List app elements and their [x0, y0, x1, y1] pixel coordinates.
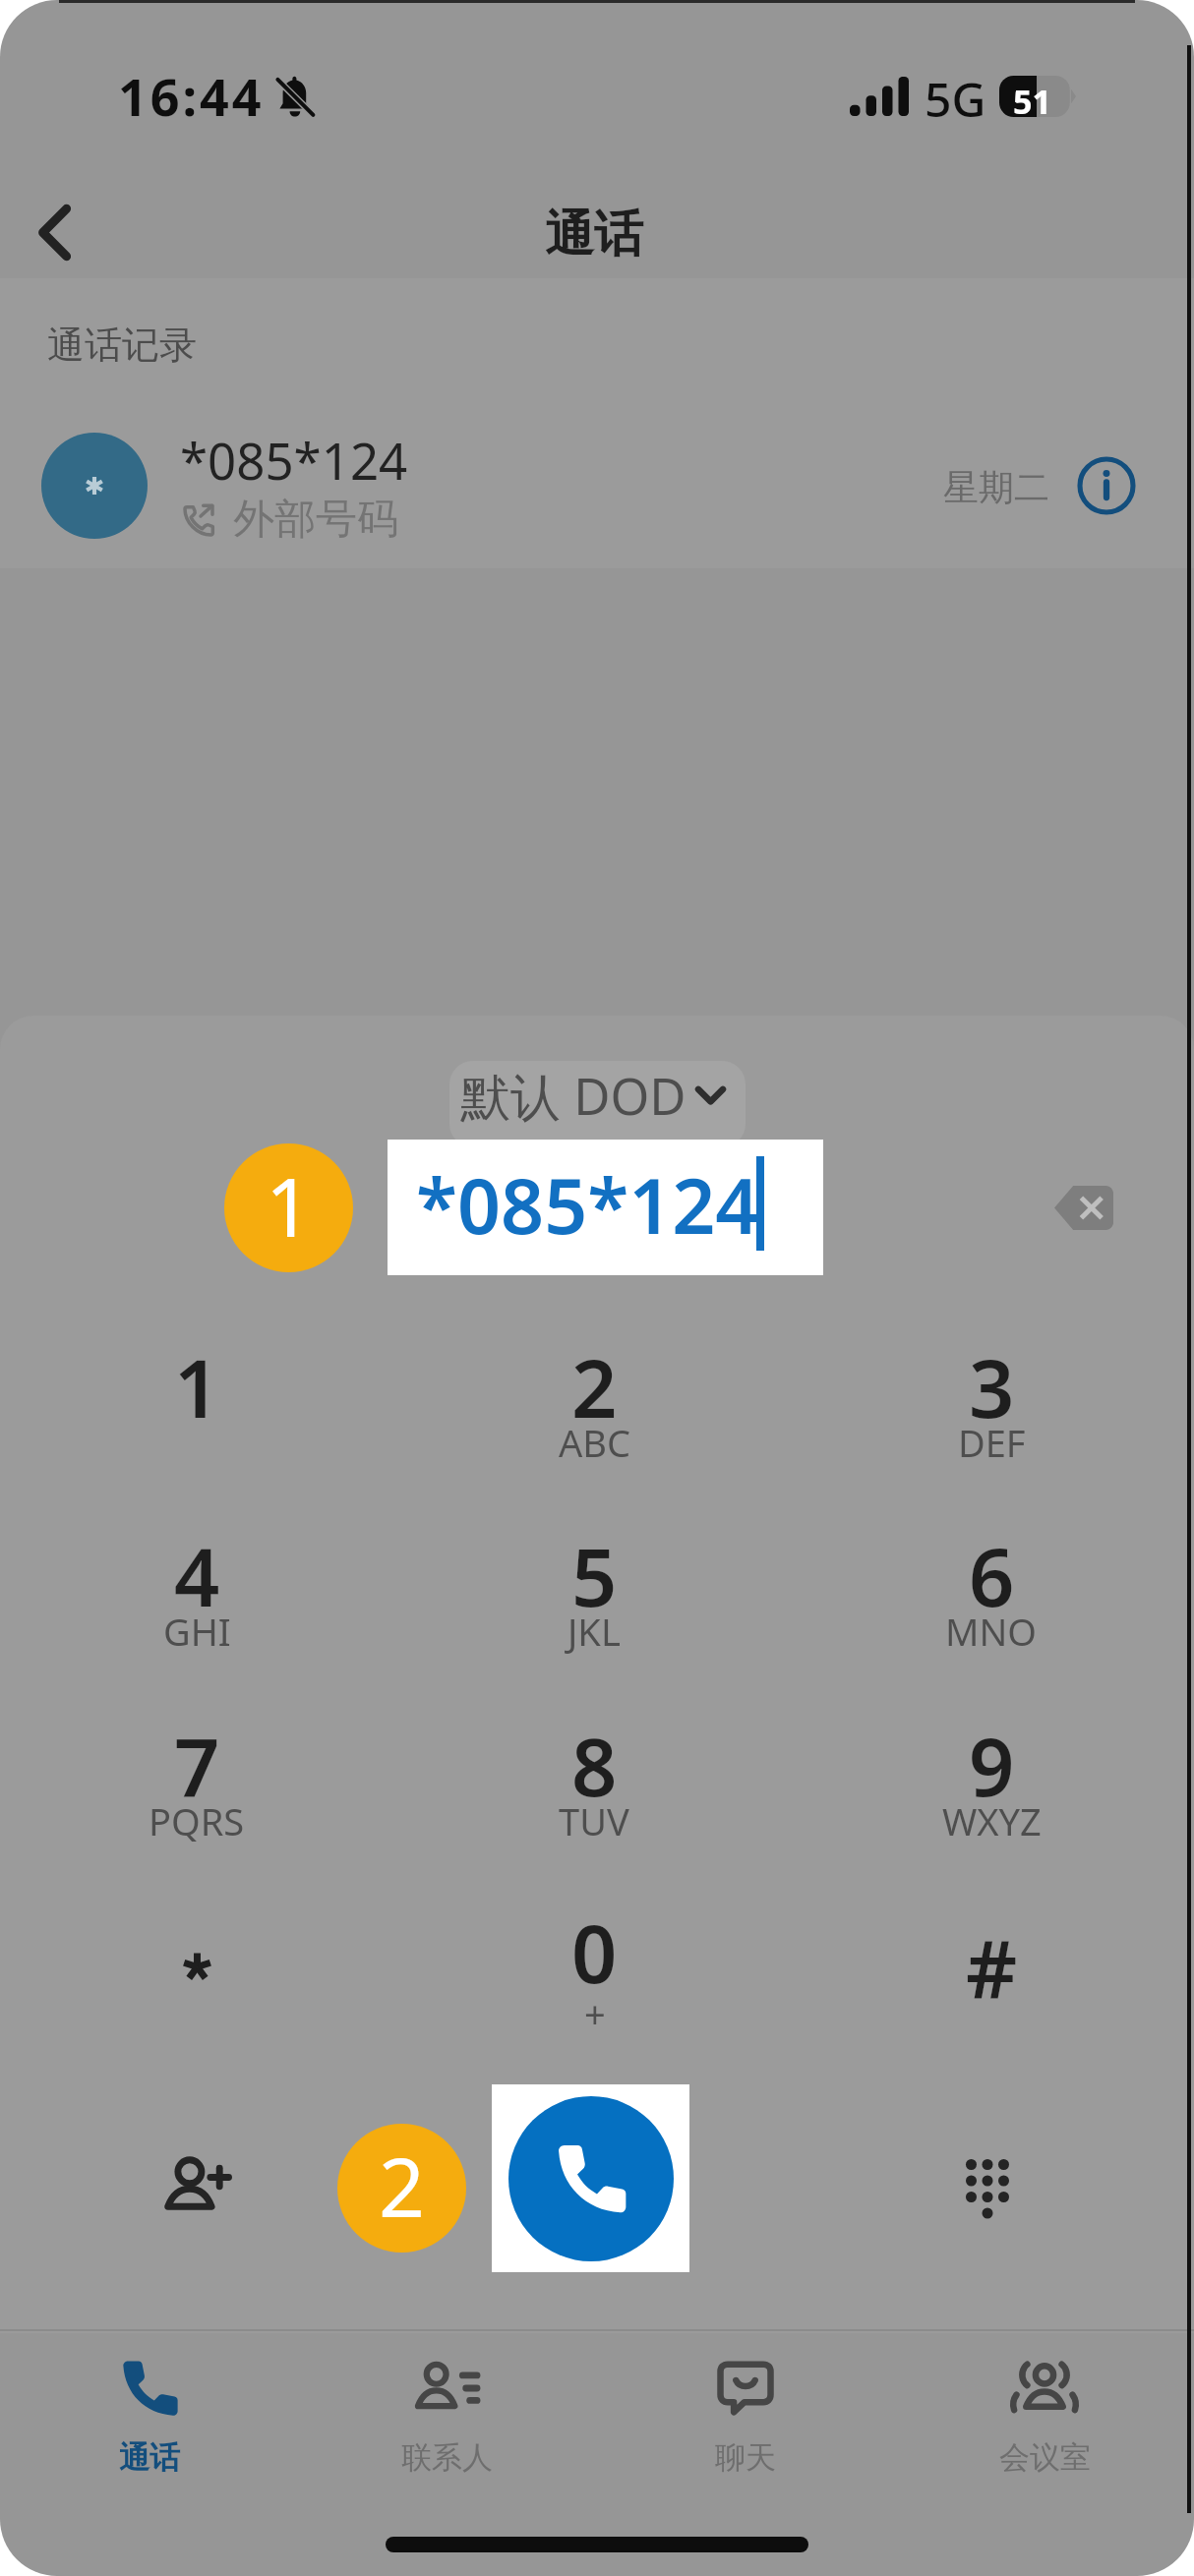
- button[interactable]: 会议室: [895, 2331, 1194, 2508]
- staticText: 5: [571, 1521, 618, 1629]
- button[interactable]: 8: [466, 1711, 722, 1893]
- button[interactable]: Back: [14, 173, 108, 291]
- staticText: *085*124: [180, 426, 408, 494]
- staticText: JKL: [567, 1606, 621, 1657]
- button[interactable]: 4: [69, 1521, 325, 1703]
- button[interactable]: 通话: [0, 2331, 298, 2508]
- button[interactable]: 6: [864, 1521, 1119, 1703]
- staticText: DEF: [958, 1417, 1026, 1468]
- staticText: 5G: [925, 67, 986, 131]
- staticText: 1: [266, 1150, 312, 1260]
- staticText: 通话记录: [47, 322, 197, 369]
- button[interactable]: *085*124: [0, 405, 1194, 566]
- staticText: PQRS: [149, 1795, 245, 1846]
- staticText: 通话: [545, 204, 643, 265]
- staticText: 0: [571, 1898, 618, 2006]
- button[interactable]: Call: [508, 2096, 674, 2261]
- staticText: *085*124: [416, 1153, 759, 1257]
- staticText: MNO: [945, 1606, 1038, 1657]
- staticText: 6: [969, 1521, 1015, 1629]
- button[interactable]: 2: [466, 1332, 722, 1514]
- button[interactable]: Backspace: [1037, 1168, 1131, 1247]
- button[interactable]: 默认 DOD: [449, 1061, 746, 1147]
- button[interactable]: 1: [69, 1332, 325, 1514]
- staticText: 会议室: [999, 2438, 1091, 2477]
- staticText: 51: [1013, 79, 1051, 120]
- button[interactable]: 联系人: [298, 2331, 596, 2508]
- staticText: 2: [379, 2131, 425, 2241]
- staticText: 7: [174, 1711, 220, 1819]
- staticText: 8: [571, 1711, 618, 1819]
- staticText: +: [584, 1988, 606, 2039]
- staticText: 16:44: [118, 61, 265, 131]
- button[interactable]: 5: [466, 1521, 722, 1703]
- button[interactable]: 0: [466, 1898, 722, 2079]
- staticText: 通话: [119, 2438, 180, 2477]
- staticText: 3: [969, 1332, 1015, 1440]
- staticText: 9: [969, 1711, 1015, 1819]
- staticText: GHI: [163, 1606, 231, 1657]
- staticText: 联系人: [401, 2438, 493, 2477]
- staticText: WXYZ: [942, 1795, 1042, 1846]
- button[interactable]: 聊天: [596, 2331, 895, 2508]
- button[interactable]: [69, 1898, 325, 2079]
- button[interactable]: 9: [864, 1711, 1119, 1893]
- button[interactable]: 3: [864, 1332, 1119, 1514]
- staticText: #: [966, 1912, 1018, 2020]
- staticText: 默认 DOD: [460, 1061, 687, 1130]
- staticText: 星期二: [943, 465, 1049, 509]
- staticText: 聊天: [715, 2438, 776, 2477]
- staticText: 4: [174, 1521, 220, 1629]
- staticText: 外部号码: [233, 494, 398, 546]
- button[interactable]: Call details: [1076, 455, 1137, 516]
- staticText: 1: [174, 1332, 220, 1440]
- button[interactable]: Add contact: [153, 2140, 242, 2229]
- button[interactable]: 7: [69, 1711, 325, 1893]
- staticText: TUV: [559, 1795, 629, 1846]
- button[interactable]: #: [864, 1898, 1119, 2079]
- button[interactable]: Keypad: [943, 2141, 1032, 2230]
- staticText: 2: [571, 1332, 618, 1440]
- staticText: ABC: [559, 1417, 630, 1468]
